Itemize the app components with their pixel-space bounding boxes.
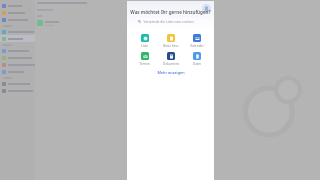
button[interactable]: Termin [132,51,157,67]
button[interactable]: Liste [132,33,157,49]
staticText: Termin [139,62,150,66]
button[interactable]: Kalender [184,33,209,49]
staticText: Liste [141,44,148,48]
staticText: Datei [193,62,201,66]
button[interactable]: Datei [184,51,209,67]
button[interactable]: Profil [202,4,211,13]
staticText: Notiz hinz. [163,44,179,48]
button[interactable]: Notiz hinz. [158,33,183,49]
button[interactable]: Mehr anzeigen [127,70,214,75]
button[interactable]: Dokument [158,51,183,67]
staticText: Was möchtet Ihr gerne hinzufügen? [130,9,211,15]
staticText: Mehr anzeigen [157,70,185,75]
button[interactable]: Verwende die Liste zum suchen [135,18,207,25]
staticText: Dokument [163,62,179,66]
staticText: Kalender [190,44,204,48]
staticText: Verwende die Liste zum suchen [143,19,194,24]
